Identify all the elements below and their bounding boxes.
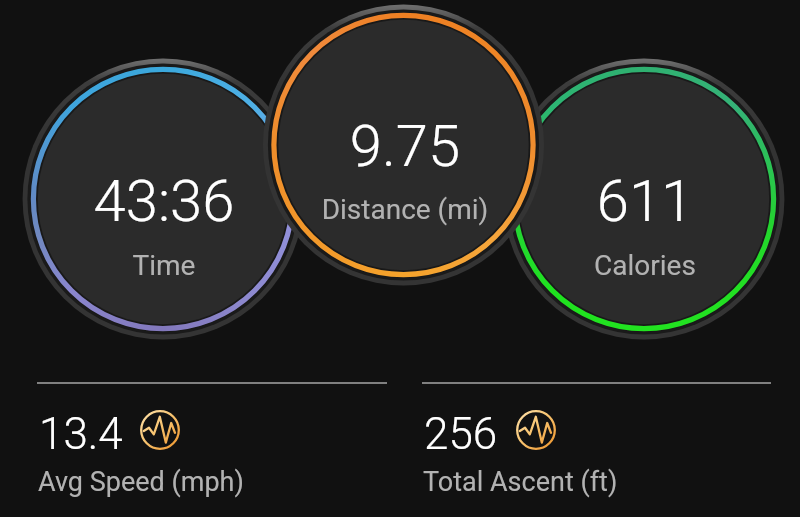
button[interactable]: 9.75 xyxy=(245,92,565,212)
staticText: Total Ascent (ft) xyxy=(423,466,618,498)
button[interactable]: 611 xyxy=(485,147,800,267)
button[interactable]: 13.4 xyxy=(37,382,387,510)
staticText: 9.75 xyxy=(245,112,565,180)
staticText: Distance (mi) xyxy=(245,193,565,226)
staticText: 43:36 xyxy=(4,167,324,235)
button[interactable]: 43:36 xyxy=(4,147,324,267)
staticText: 13.4 xyxy=(39,408,123,460)
staticText: 611 xyxy=(485,167,800,235)
staticText: 256 xyxy=(424,408,498,460)
other: Details xyxy=(140,410,180,450)
staticText: Time xyxy=(4,249,324,282)
button[interactable]: 256 xyxy=(422,382,771,510)
staticText: Calories xyxy=(485,249,800,282)
staticText: Avg Speed (mph) xyxy=(38,466,244,498)
other: Details xyxy=(516,410,556,450)
